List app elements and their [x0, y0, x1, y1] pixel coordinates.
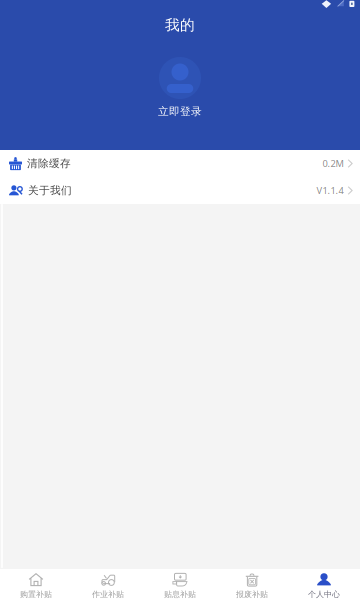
- button[interactable]: 立即登录: [0, 57, 360, 118]
- staticText: V1.1.4: [316, 184, 343, 197]
- staticText: 0.2M: [322, 157, 343, 170]
- button[interactable]: 购置补贴: [0, 569, 72, 600]
- button[interactable]: 个人中心: [288, 569, 360, 600]
- button[interactable]: 清除缓存: [0, 150, 360, 177]
- staticText: 我的: [165, 16, 195, 34]
- staticText: 关于我们: [28, 184, 72, 197]
- staticText: 立即登录: [158, 105, 202, 118]
- button[interactable]: 贴息补贴: [144, 569, 216, 600]
- button[interactable]: 作业补贴: [72, 569, 144, 600]
- staticText: 购置补贴: [20, 589, 52, 599]
- button[interactable]: 关于我们: [0, 177, 360, 204]
- staticText: 清除缓存: [27, 157, 71, 170]
- staticText: 个人中心: [308, 589, 340, 599]
- button[interactable]: 报废补贴: [216, 569, 288, 600]
- staticText: 作业补贴: [92, 589, 124, 599]
- staticText: 报废补贴: [236, 589, 268, 599]
- staticText: 贴息补贴: [164, 589, 196, 599]
